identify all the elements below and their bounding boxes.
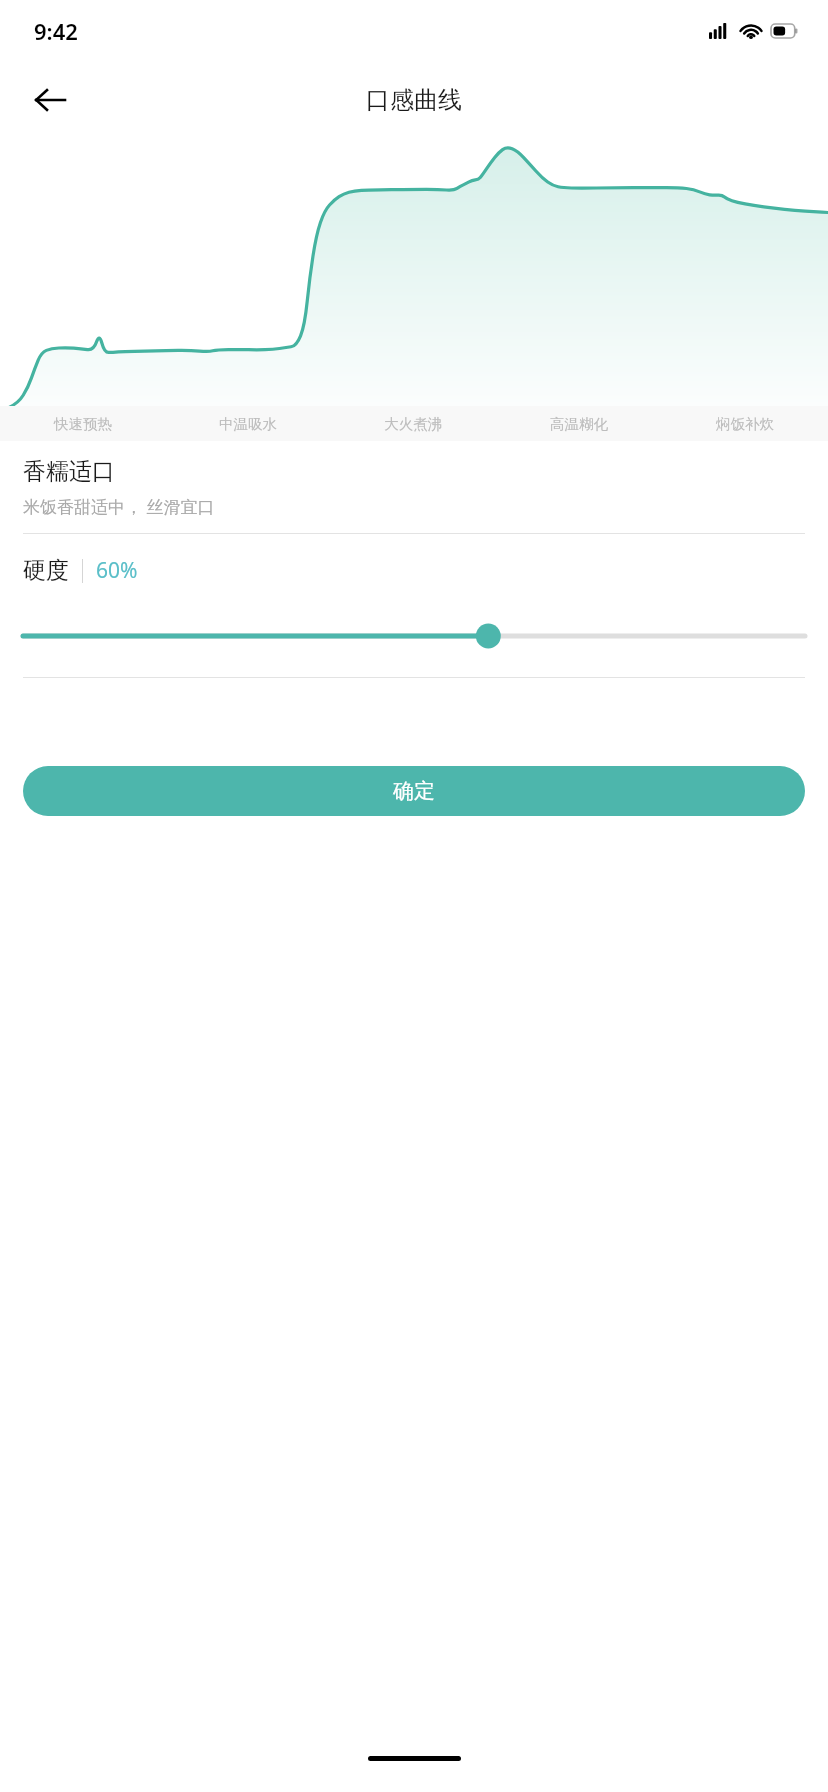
button[interactable]: Back (22, 72, 78, 128)
staticText: 快速预热 (54, 415, 112, 433)
staticText: 确定 (393, 778, 435, 804)
button[interactable]: 大火煮沸 (330, 406, 496, 441)
staticText: 大火煮沸 (384, 415, 442, 433)
button[interactable]: Hardness slider (0, 610, 828, 662)
staticText: 香糯适口 (23, 457, 115, 486)
button[interactable]: 快速预热 (0, 406, 165, 441)
staticText: 口感曲线 (366, 85, 462, 115)
staticText: 米饭香甜适中， 丝滑宜口 (23, 495, 215, 518)
button[interactable]: 高温糊化 (496, 406, 662, 441)
button[interactable]: 焖饭补炊 (662, 406, 828, 441)
button[interactable]: 确定 (23, 766, 805, 816)
staticText: 焖饭补炊 (716, 415, 774, 433)
button[interactable]: 中温吸水 (165, 406, 330, 441)
staticText: 中温吸水 (219, 415, 277, 433)
staticText: 60% (96, 556, 138, 585)
staticText: 高温糊化 (550, 415, 608, 433)
staticText: 硬度 (23, 556, 69, 585)
staticText: 9:42 (34, 16, 78, 46)
